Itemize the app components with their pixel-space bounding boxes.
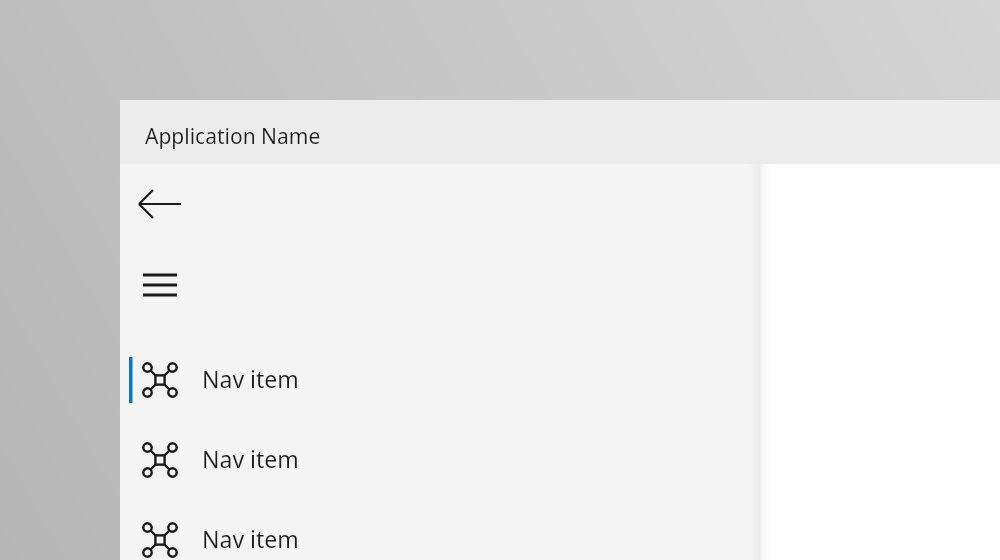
- button[interactable]: Navigation menu: [145, 262, 193, 308]
- button[interactable]: Back: [145, 180, 193, 228]
- button[interactable]: Nav item: [120, 436, 760, 484]
- button[interactable]: Nav item: [120, 356, 760, 404]
- button[interactable]: Nav item: [120, 516, 760, 560]
